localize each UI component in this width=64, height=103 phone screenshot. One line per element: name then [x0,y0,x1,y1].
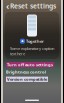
staticText: Turn off auto settings [7,62,53,67]
staticText: Brightness control [6,69,46,75]
staticText: Reset settings [10,2,56,10]
staticText: ‹ [6,0,9,12]
staticText: Some explanatory caption text here [10,46,54,56]
staticText: Together [26,38,44,44]
button[interactable]: ‹ [6,0,56,12]
staticText: Version compatible [7,77,47,82]
